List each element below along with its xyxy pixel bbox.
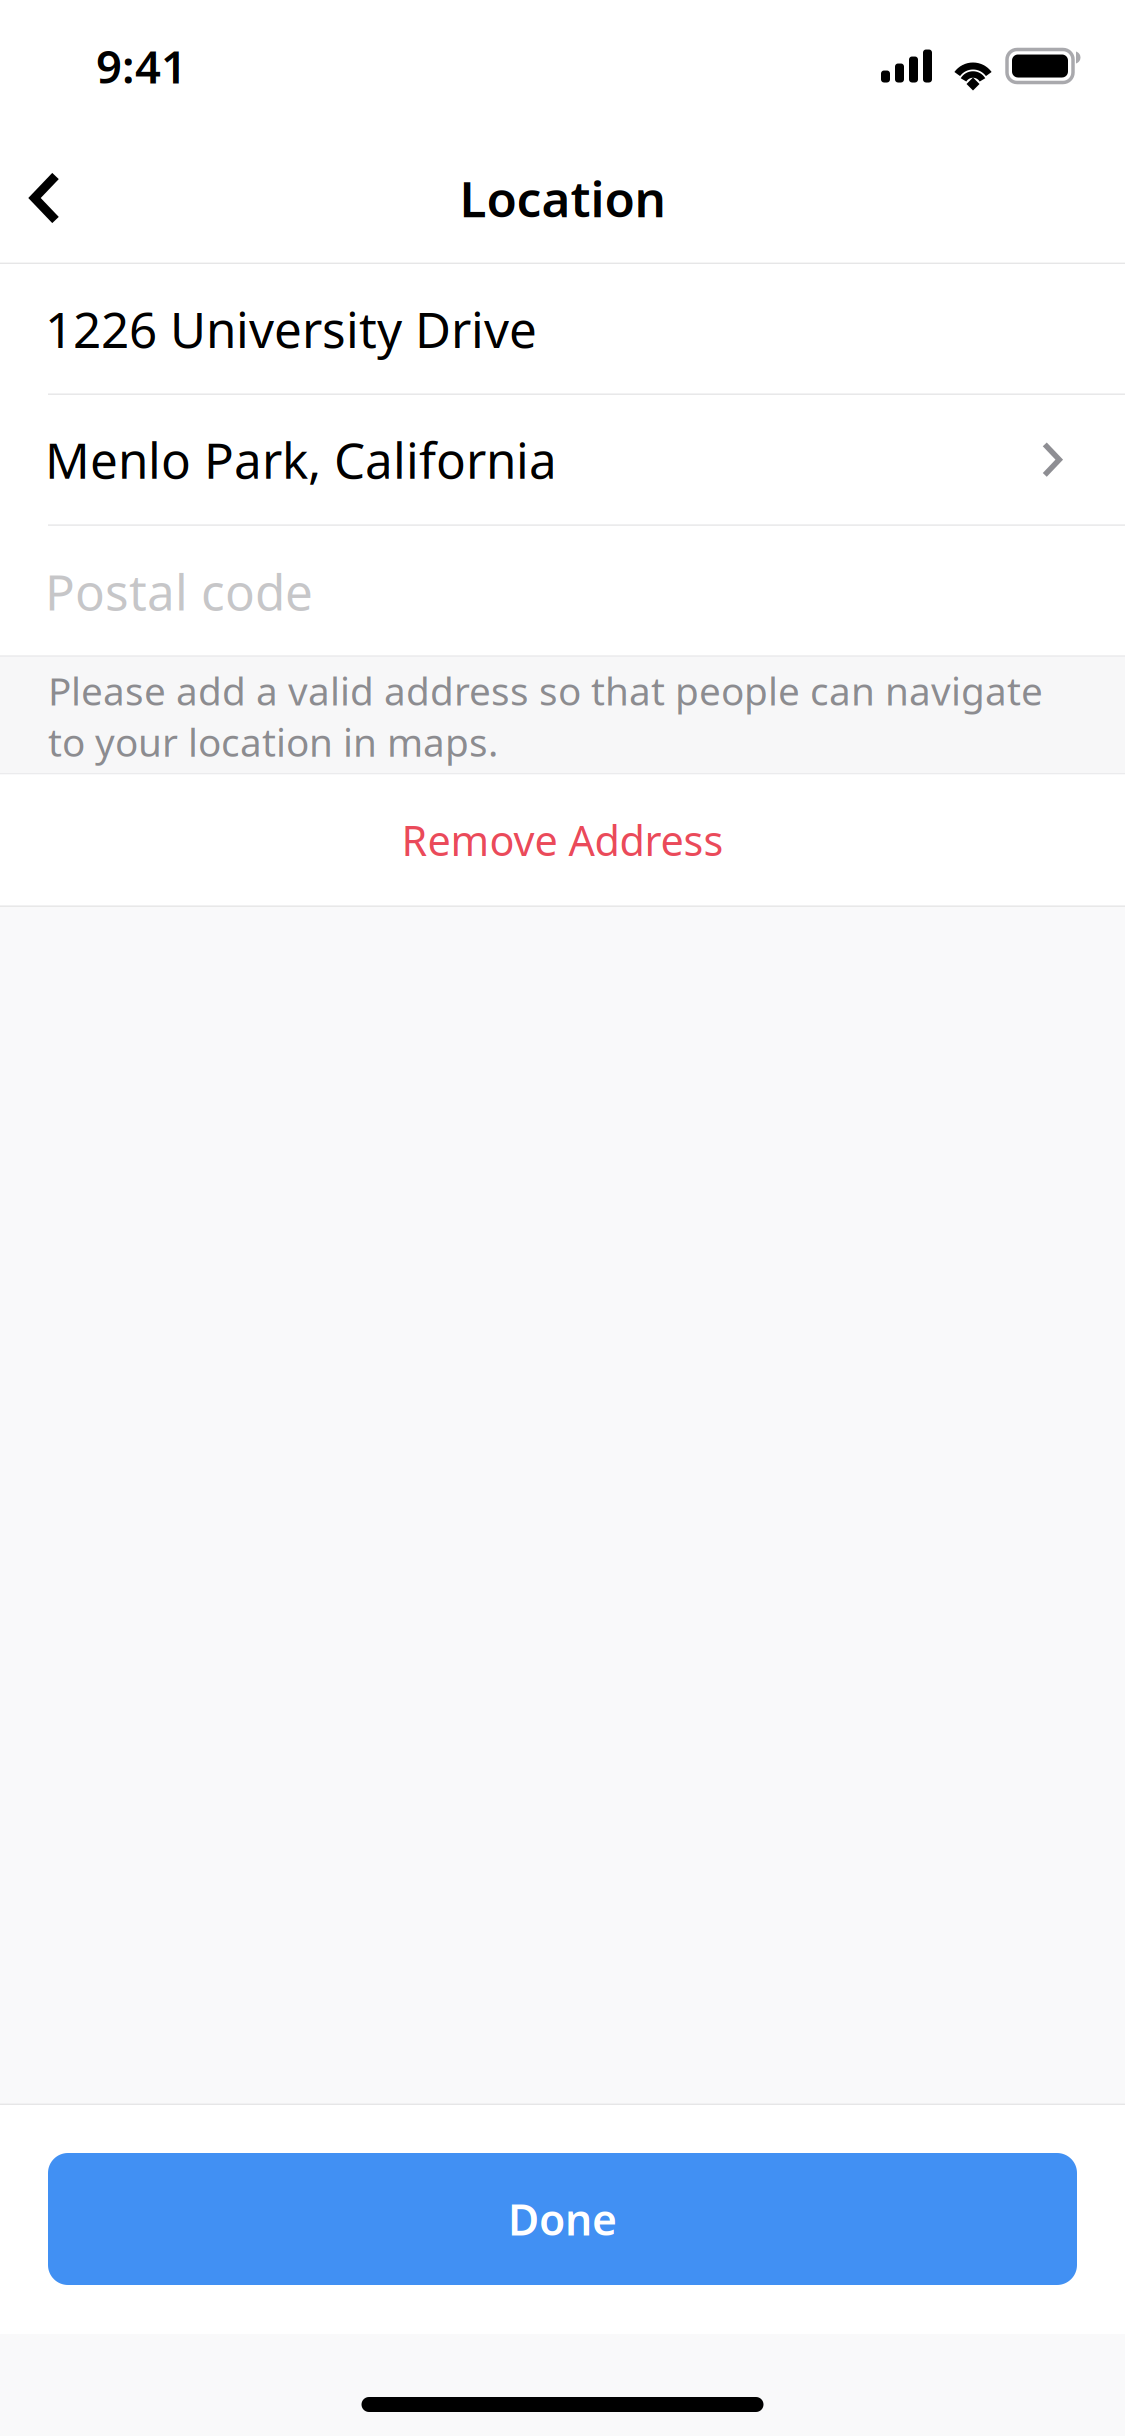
button[interactable]: Back	[0, 132, 132, 264]
button[interactable]: Done	[48, 2153, 1077, 2285]
staticText: 1226 University Drive	[45, 296, 537, 361]
staticText: Please add a valid address so that peopl…	[48, 665, 1043, 767]
staticText: Location	[459, 165, 665, 231]
staticText: Done	[508, 2191, 617, 2247]
staticText: Remove Address	[401, 813, 723, 867]
button[interactable]: 1226 University Drive	[0, 264, 1125, 395]
staticText: Menlo Park, California	[45, 427, 557, 492]
staticText: Postal code	[45, 558, 313, 624]
button[interactable]: Postal code	[0, 526, 1125, 657]
staticText: 9:41	[96, 36, 187, 96]
button[interactable]: Menlo Park, California	[0, 395, 1125, 526]
button[interactable]: Remove Address	[0, 774, 1125, 905]
